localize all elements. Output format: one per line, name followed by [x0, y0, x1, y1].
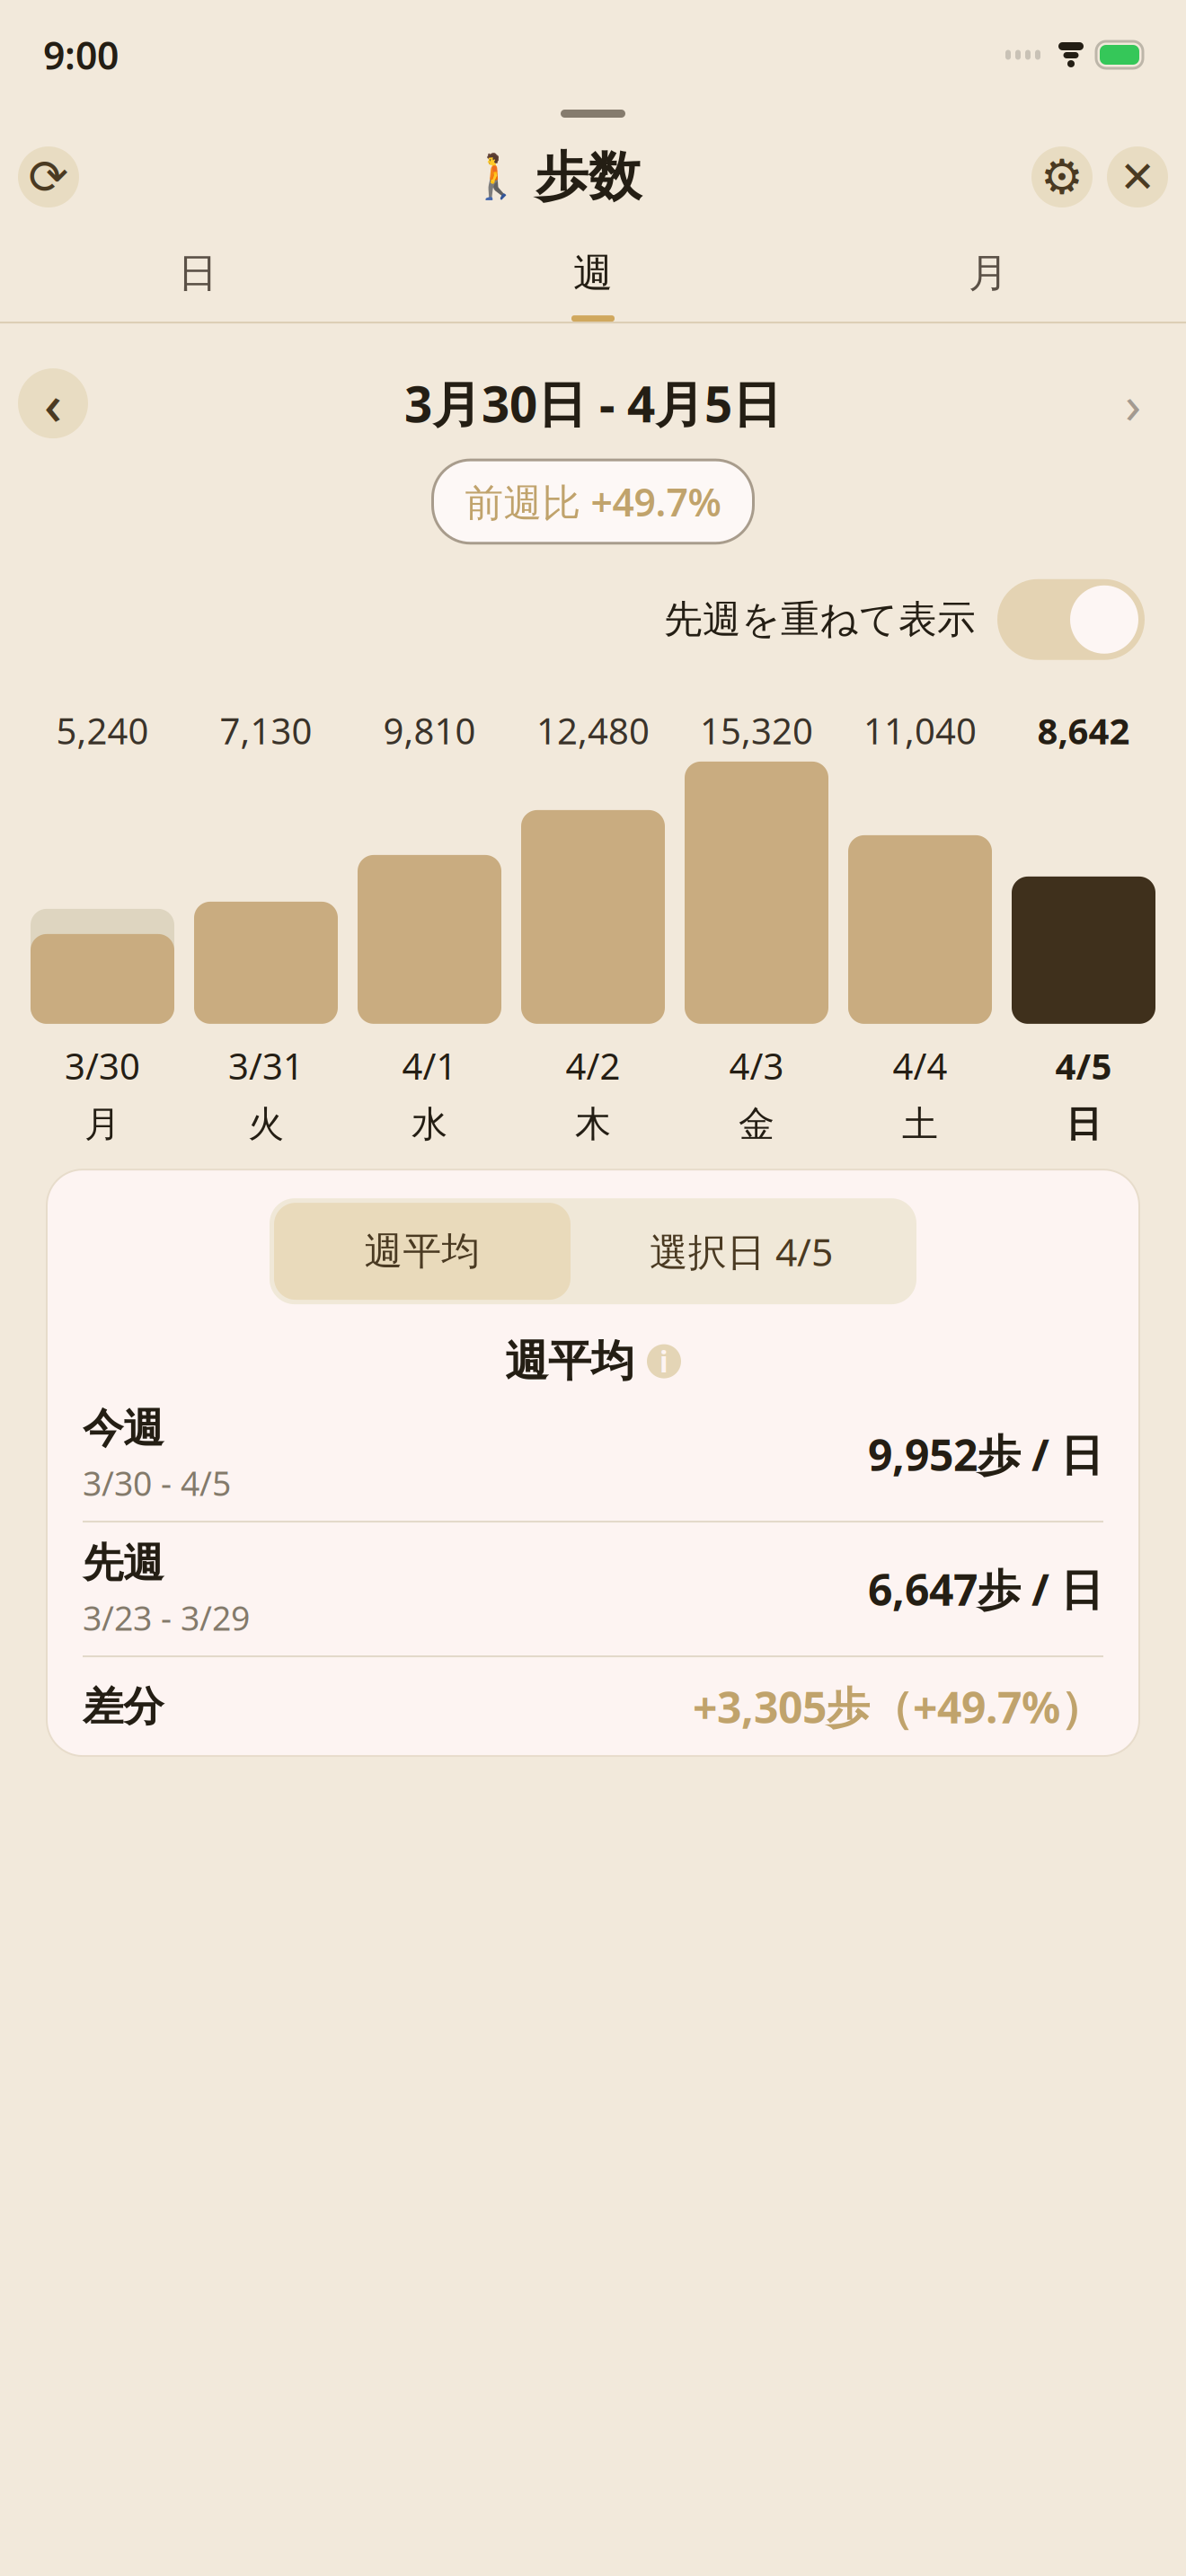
- staticText: 先週を重ねて表示: [664, 596, 976, 643]
- button[interactable]: 閉じる: [1107, 146, 1168, 207]
- staticText: 9,810: [383, 707, 476, 754]
- staticText: ⚙: [1040, 150, 1084, 204]
- staticText: ⟳: [28, 150, 69, 204]
- staticText: +3,305歩（+49.7%）: [693, 1678, 1103, 1735]
- staticText: ✕: [1120, 153, 1155, 201]
- staticText: 4/2: [566, 1042, 620, 1090]
- staticText: 3/30 - 4/5: [83, 1461, 231, 1505]
- button[interactable]: 選択日 4/5: [571, 1203, 912, 1300]
- staticText: 土: [902, 1102, 938, 1146]
- staticText: 🚶: [469, 152, 523, 202]
- staticText: 11,040: [863, 707, 977, 754]
- staticText: 火: [248, 1102, 284, 1146]
- staticText: ‹: [44, 367, 62, 440]
- staticText: 日: [1066, 1102, 1102, 1146]
- button[interactable]: 週平均: [274, 1203, 571, 1300]
- staticText: 3/23 - 3/29: [83, 1595, 250, 1640]
- button[interactable]: 次の週: [1098, 368, 1168, 438]
- staticText: 歩数: [535, 145, 642, 209]
- button[interactable]: 週: [395, 249, 791, 322]
- staticText: 差分: [83, 1682, 164, 1732]
- staticText: 5,240: [56, 707, 149, 754]
- staticText: 4/5: [1055, 1042, 1112, 1090]
- staticText: 金: [739, 1102, 774, 1146]
- staticText: 水: [412, 1102, 447, 1146]
- staticText: 3/30: [65, 1042, 140, 1090]
- button[interactable]: 先週を重ねて表示: [664, 579, 1145, 660]
- staticText: 3月30日 - 4月5日: [404, 371, 782, 436]
- button[interactable]: 月: [791, 249, 1186, 322]
- staticText: 週平均: [505, 1335, 634, 1388]
- staticText: 今週: [83, 1403, 164, 1453]
- staticText: 4/1: [402, 1042, 457, 1090]
- button[interactable]: 設定: [1031, 146, 1093, 207]
- staticText: i: [659, 1342, 668, 1380]
- staticText: 木: [575, 1102, 611, 1146]
- staticText: 7,130: [220, 707, 312, 754]
- staticText: ›: [1125, 368, 1141, 438]
- staticText: 週: [573, 249, 613, 297]
- staticText: 8,642: [1037, 707, 1130, 754]
- staticText: 日: [178, 249, 217, 297]
- staticText: 月: [969, 249, 1008, 297]
- staticText: 9,952歩 / 日: [868, 1426, 1103, 1483]
- button[interactable]: 情報: [647, 1344, 681, 1378]
- staticText: 4/4: [893, 1042, 947, 1090]
- staticText: 先週: [83, 1538, 164, 1588]
- button[interactable]: 前の週: [18, 368, 88, 438]
- staticText: 4/3: [729, 1042, 784, 1090]
- staticText: 6,647歩 / 日: [868, 1560, 1103, 1618]
- staticText: 月: [84, 1102, 120, 1146]
- staticText: 3/31: [228, 1042, 304, 1090]
- staticText: 15,320: [700, 707, 813, 754]
- button[interactable]: 日: [0, 249, 395, 322]
- staticText: 12,480: [536, 707, 650, 754]
- staticText: 週平均: [364, 1228, 480, 1275]
- staticText: 選択日 4/5: [650, 1226, 833, 1277]
- button[interactable]: 更新: [18, 146, 79, 207]
- staticText: 前週比 +49.7%: [465, 476, 721, 527]
- staticText: 9:00: [43, 29, 119, 80]
